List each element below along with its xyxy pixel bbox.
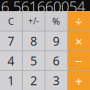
button[interactable]: C <box>0 12 22 31</box>
staticText: 1 <box>7 72 14 88</box>
staticText: 4 <box>7 53 14 69</box>
button[interactable]: +/- <box>23 12 45 31</box>
button[interactable]: 2 <box>23 71 45 90</box>
staticText: 7 <box>7 33 14 49</box>
staticText: 3 <box>53 72 60 88</box>
button[interactable]: 8 <box>23 31 45 50</box>
button[interactable]: ÷ <box>68 12 90 31</box>
button[interactable]: % <box>45 12 67 31</box>
staticText: 2 <box>30 72 37 88</box>
button[interactable]: 4 <box>0 51 22 70</box>
button[interactable]: 5 <box>23 51 45 70</box>
button[interactable]: 1 <box>0 71 22 90</box>
staticText: 6 <box>53 53 60 69</box>
staticText: − <box>75 52 83 70</box>
staticText: C <box>8 15 14 27</box>
button[interactable]: 6 <box>45 51 67 70</box>
staticText: 6.561660054 <box>1 0 85 16</box>
staticText: ÷ <box>75 12 83 30</box>
button[interactable]: 7 <box>0 31 22 50</box>
staticText: 8 <box>30 33 37 49</box>
staticText: 5 <box>30 53 37 69</box>
button[interactable]: × <box>68 31 90 50</box>
button[interactable]: + <box>68 71 90 90</box>
staticText: +/- <box>28 16 39 26</box>
staticText: 9 <box>53 33 60 49</box>
button[interactable]: 9 <box>45 31 67 50</box>
staticText: + <box>75 72 83 89</box>
button[interactable]: 3 <box>45 71 67 90</box>
button[interactable]: − <box>68 51 90 70</box>
staticText: × <box>75 32 83 50</box>
staticText: % <box>52 15 60 27</box>
